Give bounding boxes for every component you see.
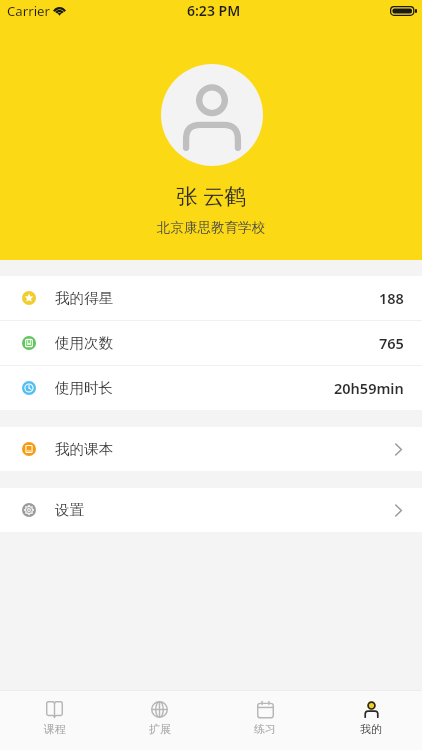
staticText: 6:23 PM (187, 1, 241, 20)
staticText: 765 (379, 333, 404, 353)
staticText: 扩展 (149, 722, 171, 736)
button[interactable]: Profile photo (161, 64, 263, 166)
staticText: 我的得星 (55, 289, 113, 307)
staticText: 张 云鹤 (176, 181, 247, 210)
button[interactable]: 使用次数 (0, 321, 422, 365)
staticText: 我的 (360, 722, 382, 736)
staticText: 我的课本 (55, 440, 113, 458)
staticText: 练习 (254, 722, 276, 736)
button[interactable]: 我的课本 (0, 427, 422, 471)
staticText: 使用时长 (55, 379, 113, 397)
staticText: Carrier (7, 2, 50, 20)
staticText: 188 (379, 288, 404, 308)
button[interactable]: 我的 (316, 691, 422, 750)
button[interactable]: 扩展 (105, 691, 210, 750)
button[interactable]: 练习 (210, 691, 316, 750)
staticText: 使用次数 (55, 334, 113, 352)
staticText: 课程 (44, 722, 66, 736)
staticText: 北京康思教育学校 (157, 219, 265, 236)
button[interactable]: 设置 (0, 488, 422, 532)
button[interactable]: 课程 (0, 691, 105, 750)
staticText: 20h59min (334, 378, 404, 398)
button[interactable]: 我的得星 (0, 276, 422, 320)
button[interactable]: 使用时长 (0, 366, 422, 410)
staticText: 设置 (55, 501, 84, 519)
